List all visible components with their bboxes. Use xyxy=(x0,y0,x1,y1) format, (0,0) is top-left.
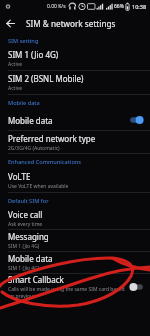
staticText: SIM 1 (Jio 4G) xyxy=(8,243,40,250)
staticText: Default SIM for xyxy=(8,197,49,205)
staticText: Ask every time xyxy=(8,221,43,228)
button[interactable]: Smart Callback xyxy=(0,274,150,300)
button[interactable]: SIM 2 (BSNL Mobile) xyxy=(0,71,150,94)
staticText: Preferred network type xyxy=(8,133,96,144)
staticText: 0.00 K/s xyxy=(47,3,66,10)
staticText: Mobile data xyxy=(8,115,53,126)
button[interactable]: Switch off xyxy=(129,282,144,292)
staticText: Messaging xyxy=(8,231,49,242)
staticText: Mobile data xyxy=(8,99,40,107)
staticText: 2G/3G/4G (Automatic) xyxy=(8,145,60,152)
staticText: Active xyxy=(8,61,23,68)
button[interactable]: SIM 1 (Jio 4G) xyxy=(0,47,150,70)
button[interactable]: Messaging xyxy=(0,230,150,251)
button[interactable]: Voice call xyxy=(0,208,150,229)
staticText: Enhanced Communications xyxy=(8,158,82,166)
button[interactable]: Mobile data xyxy=(0,110,150,130)
staticText: Voice call xyxy=(8,209,43,220)
button[interactable]: VoLTE xyxy=(0,169,150,192)
staticText: Smart Callback xyxy=(8,274,64,285)
staticText: SIM & network settings xyxy=(26,18,116,29)
staticText: Calls will be made using the same SIM ca… xyxy=(8,286,125,300)
staticText: Use VoLTE when available xyxy=(8,183,69,190)
button[interactable]: Mobile data xyxy=(0,252,150,273)
staticText: Active xyxy=(8,85,23,92)
staticText: SIM setting xyxy=(8,37,39,45)
button[interactable]: Back xyxy=(0,13,21,34)
staticText: Mobile data xyxy=(8,253,53,264)
staticText: 10:38 xyxy=(132,3,147,10)
button[interactable]: Preferred network type xyxy=(0,131,150,153)
staticText: SIM 2 (BSNL Mobile) xyxy=(8,73,84,84)
staticText: VoLTE xyxy=(8,171,31,182)
staticText: SIM 1 (Jio 4G) xyxy=(8,49,59,60)
staticText: SIM 1 (Jio 4G) xyxy=(8,265,40,272)
staticText: 66% xyxy=(114,3,124,10)
button[interactable]: Switch on xyxy=(129,115,144,125)
